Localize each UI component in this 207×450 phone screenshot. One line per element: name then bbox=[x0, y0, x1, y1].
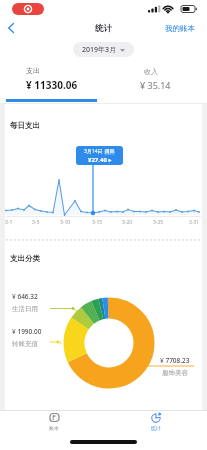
button[interactable]: ¥ 1990.00 bbox=[12, 327, 42, 348]
staticText: 2019年3月 bbox=[82, 45, 117, 55]
staticText: 周四 bbox=[105, 149, 114, 155]
staticText: 支出分类 bbox=[10, 254, 40, 263]
button[interactable]: 收入 bbox=[104, 62, 207, 98]
staticText: ¥ 646.32 bbox=[12, 292, 38, 301]
staticText: 每日支出 bbox=[10, 121, 40, 130]
button[interactable]: 2019年3月 bbox=[73, 42, 134, 57]
button[interactable]: ¥ 646.32 bbox=[12, 292, 38, 313]
button[interactable] bbox=[12, 3, 44, 15]
staticText: ¥27.40 ▸ bbox=[88, 156, 112, 164]
staticText: 3-20 bbox=[122, 219, 133, 226]
button[interactable]: 3月14日 bbox=[76, 146, 123, 165]
staticText: 统计 bbox=[151, 425, 161, 431]
staticText: 统计 bbox=[95, 23, 112, 34]
staticText: 服饰美容 bbox=[162, 369, 188, 377]
button[interactable]: 账本 bbox=[34, 412, 74, 434]
staticText: 3-25 bbox=[153, 219, 164, 226]
staticText: 3-5 bbox=[32, 219, 40, 226]
staticText: ¥ 7708.23 bbox=[160, 356, 190, 365]
staticText: 我的账本 bbox=[165, 24, 195, 33]
staticText: ¥ 1990.00 bbox=[12, 327, 42, 336]
staticText: 3-31 bbox=[189, 219, 200, 226]
button[interactable]: 我的账本 bbox=[160, 21, 200, 35]
staticText: 3-10 bbox=[60, 219, 71, 226]
button[interactable]: 统计 bbox=[136, 412, 176, 434]
staticText: 3月14日 bbox=[84, 148, 104, 155]
staticText: 收入 bbox=[144, 67, 158, 76]
staticText: 3-15 bbox=[92, 219, 103, 226]
staticText: ¥ 11330.06 bbox=[26, 78, 78, 92]
button[interactable] bbox=[2, 20, 20, 36]
staticText: 转账充值 bbox=[12, 340, 38, 348]
staticText: 生活日用 bbox=[12, 305, 38, 313]
staticText: ¥ 35.14 bbox=[140, 79, 171, 91]
staticText: 支出 bbox=[26, 66, 40, 75]
button[interactable]: ¥ 7708.23 bbox=[152, 356, 198, 377]
button[interactable]: 支出 bbox=[0, 62, 103, 98]
staticText: 账本 bbox=[49, 425, 59, 431]
staticText: 3-1 bbox=[5, 219, 13, 226]
